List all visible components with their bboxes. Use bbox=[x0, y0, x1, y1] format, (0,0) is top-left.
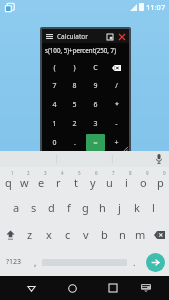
button[interactable]: j bbox=[111, 194, 128, 221]
button[interactable]: 8 bbox=[65, 78, 84, 94]
button[interactable]: ( bbox=[45, 60, 63, 76]
button[interactable]: 4 bbox=[50, 167, 67, 194]
button[interactable]: Voice input bbox=[149, 151, 169, 167]
button[interactable]: Backspace bbox=[149, 221, 169, 248]
button[interactable]: x bbox=[39, 221, 58, 248]
button[interactable]: - bbox=[107, 115, 126, 132]
button[interactable]: k bbox=[128, 194, 145, 221]
button[interactable]: Hide keyboard bbox=[131, 276, 161, 300]
button[interactable]: Shift bbox=[0, 221, 20, 248]
staticText: a bbox=[13, 200, 20, 215]
button[interactable]: 7 bbox=[45, 78, 63, 94]
button[interactable]: 0 bbox=[45, 134, 63, 151]
staticText: 7 bbox=[112, 170, 115, 176]
staticText: 8 bbox=[72, 81, 77, 91]
staticText: v bbox=[83, 227, 89, 242]
button[interactable]: l bbox=[145, 194, 162, 221]
staticText: . bbox=[133, 256, 136, 268]
button[interactable]: 8 bbox=[118, 167, 135, 194]
staticText: e bbox=[38, 175, 45, 190]
staticText: , bbox=[34, 256, 37, 268]
staticText: x bbox=[46, 227, 52, 242]
button[interactable]: , bbox=[28, 248, 42, 276]
staticText: d bbox=[48, 200, 55, 215]
button[interactable]: 1 bbox=[0, 167, 16, 194]
button[interactable]: Back bbox=[16, 276, 46, 300]
button[interactable]: h bbox=[94, 194, 111, 221]
staticText: h bbox=[99, 200, 106, 215]
button[interactable]: 3 bbox=[86, 115, 105, 132]
staticText: 0 bbox=[163, 170, 166, 176]
button[interactable]: b bbox=[95, 221, 113, 248]
staticText: ( bbox=[53, 63, 56, 73]
button[interactable]: 6 bbox=[84, 167, 101, 194]
button[interactable]: m bbox=[131, 221, 149, 248]
button[interactable]: d bbox=[43, 194, 60, 221]
staticText: 3 bbox=[44, 170, 47, 176]
button[interactable]: 5 bbox=[65, 96, 84, 113]
button[interactable]: + bbox=[107, 134, 126, 151]
button[interactable]: 9 bbox=[135, 167, 152, 194]
staticText: z bbox=[27, 227, 33, 242]
button[interactable]: ) bbox=[65, 60, 84, 76]
button[interactable]: f bbox=[60, 194, 77, 221]
button[interactable]: * bbox=[107, 96, 126, 113]
button[interactable]: Backspace bbox=[107, 60, 126, 76]
staticText: q bbox=[5, 175, 12, 190]
button[interactable]: Enter bbox=[146, 253, 165, 272]
staticText: l bbox=[152, 200, 155, 215]
button[interactable]: = bbox=[86, 134, 105, 151]
button[interactable]: a bbox=[7, 194, 25, 221]
button[interactable]: Space bbox=[42, 256, 127, 268]
button[interactable]: Home bbox=[57, 276, 87, 300]
button[interactable]: Menu bbox=[45, 32, 54, 41]
staticText: - bbox=[115, 119, 118, 129]
button[interactable]: . bbox=[127, 248, 141, 276]
button[interactable]: 9 bbox=[86, 78, 105, 94]
staticText: m bbox=[135, 227, 146, 242]
button[interactable]: 0 bbox=[152, 167, 169, 194]
staticText: s bbox=[31, 200, 37, 215]
staticText: 2 bbox=[72, 119, 77, 129]
staticText: 9 bbox=[146, 170, 149, 176]
button[interactable]: g bbox=[77, 194, 94, 221]
button[interactable]: Recent apps bbox=[98, 276, 128, 300]
button[interactable]: 1 bbox=[45, 115, 63, 132]
button[interactable]: 6 bbox=[86, 96, 105, 113]
staticText: u bbox=[106, 175, 113, 190]
staticText: p bbox=[157, 175, 164, 190]
staticText: ?123 bbox=[6, 257, 22, 267]
button[interactable]: 7 bbox=[101, 167, 118, 194]
staticText: o bbox=[140, 175, 147, 190]
staticText: 4 bbox=[52, 100, 57, 110]
button[interactable]: ?123 bbox=[0, 248, 28, 276]
staticText: 8 bbox=[129, 170, 132, 176]
button[interactable]: 5 bbox=[67, 167, 84, 194]
button[interactable]: v bbox=[77, 221, 95, 248]
button[interactable]: / bbox=[107, 78, 126, 94]
button[interactable]: 2 bbox=[65, 115, 84, 132]
button[interactable]: s bbox=[25, 194, 43, 221]
button[interactable]: 3 bbox=[33, 167, 50, 194]
staticText: g bbox=[82, 200, 89, 215]
button[interactable]: Maximize bbox=[105, 32, 114, 41]
staticText: n bbox=[119, 227, 126, 242]
staticText: j bbox=[118, 200, 121, 215]
button[interactable]: c bbox=[58, 221, 77, 248]
button[interactable]: 2 bbox=[16, 167, 33, 194]
staticText: r bbox=[56, 175, 61, 190]
staticText: 0 bbox=[52, 138, 57, 148]
staticText: 5 bbox=[72, 100, 77, 110]
staticText: y bbox=[90, 175, 96, 190]
staticText: s(100, 5)+percent(250, 7) bbox=[45, 46, 117, 54]
staticText: c bbox=[65, 227, 71, 242]
button[interactable]: z bbox=[20, 221, 39, 248]
staticText: b bbox=[101, 227, 108, 242]
button[interactable]: C bbox=[86, 60, 105, 76]
button[interactable]: n bbox=[113, 221, 131, 248]
button[interactable]: . bbox=[65, 134, 84, 151]
button[interactable]: Close bbox=[117, 32, 126, 41]
staticText: i bbox=[125, 175, 128, 190]
button[interactable]: 4 bbox=[45, 96, 63, 113]
staticText: t bbox=[74, 175, 78, 190]
